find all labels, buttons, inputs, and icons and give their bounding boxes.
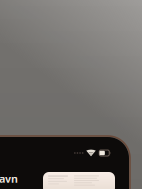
staticText: navn: [0, 171, 18, 186]
